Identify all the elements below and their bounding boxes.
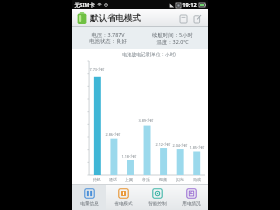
staticText: 待机	[93, 177, 101, 182]
staticText: 音乐	[142, 177, 150, 182]
staticText: 默认省电模式	[90, 13, 141, 24]
staticText: 闪光	[176, 177, 184, 182]
staticText: 2.12小时	[155, 142, 171, 147]
staticText: 19:12	[182, 1, 197, 9]
staticText: 省电模式	[114, 201, 133, 207]
staticText: 1.18小时	[121, 154, 137, 159]
staticText: 温度：32.0℃	[156, 38, 189, 45]
button[interactable]: 用电情况	[174, 185, 208, 210]
staticText: 无SIM卡	[74, 1, 95, 8]
button[interactable]: 电量信息	[72, 185, 106, 210]
button[interactable]: 智能控制	[140, 185, 174, 210]
staticText: 1.85小时	[189, 145, 205, 150]
staticText: 续航时间：5小时	[152, 31, 193, 38]
staticText: 3.89小时	[138, 118, 154, 123]
staticText: 电池放电记录(单位：小时)	[122, 51, 176, 57]
button[interactable]: 记录	[178, 13, 189, 24]
staticText: 通话	[109, 177, 117, 182]
staticText: 用电情况	[182, 201, 201, 207]
staticText: 2.86小时	[105, 132, 121, 137]
staticText: 游戏	[193, 177, 201, 182]
staticText: 上网	[125, 177, 133, 182]
button[interactable]: 省电模式	[106, 185, 140, 210]
staticText: 电压：3.787V	[91, 31, 125, 38]
staticText: 智能控制	[148, 201, 167, 207]
staticText: 电量信息	[80, 201, 99, 207]
staticText: 7.73小时	[89, 67, 105, 72]
staticText: 电池状态：良好	[89, 38, 127, 45]
button[interactable]: 编辑	[192, 13, 203, 24]
staticText: 2.04小时	[172, 143, 188, 148]
staticText: 视频	[159, 177, 167, 182]
